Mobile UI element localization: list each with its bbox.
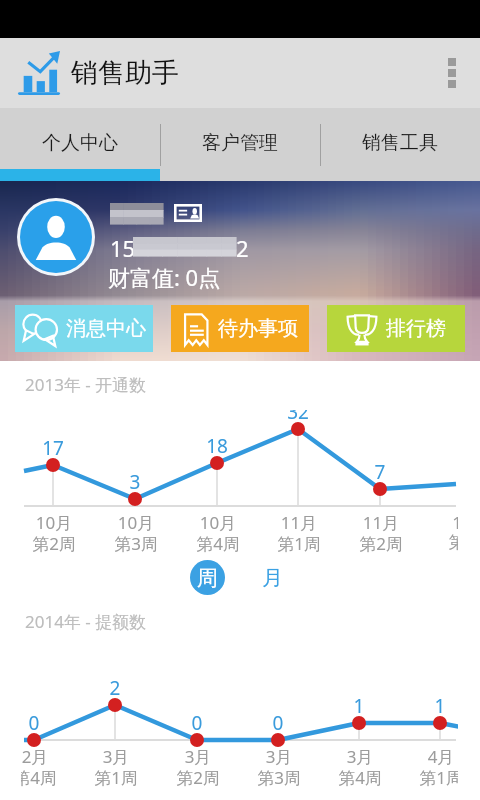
staticText: 10月 (9, 511, 99, 534)
staticText: 2014年 - 提额数 (25, 610, 147, 633)
staticText: 销售工具 (362, 131, 438, 155)
staticText: 个人中心 (42, 131, 118, 155)
staticText: 3月 (315, 745, 405, 768)
staticText: 第2周 (153, 766, 243, 789)
staticText: 11月 (336, 511, 426, 534)
staticText: 第1周 (254, 532, 344, 555)
staticText: 7 (355, 459, 405, 485)
staticText: 17 (28, 435, 78, 461)
staticText: 第4周 (173, 532, 263, 555)
staticText: 月 (262, 565, 283, 591)
staticText: 3月 (234, 745, 324, 768)
staticText: 0 (9, 710, 59, 736)
button[interactable]: 排行榜 (327, 305, 465, 352)
staticText (416, 766, 480, 789)
staticText: 第1周 (396, 766, 480, 789)
staticText: 1 (412, 511, 480, 534)
staticText: 销售助手 (71, 56, 179, 90)
staticText: 10月 (91, 511, 181, 534)
staticText: 第3周 (234, 766, 324, 789)
staticText: 待办事项 (218, 316, 298, 341)
staticText: 周 (197, 565, 218, 591)
staticText: 1 (334, 693, 384, 719)
button[interactable]: 个人中心 (0, 108, 160, 181)
button[interactable]: 销售工具 (320, 108, 480, 181)
staticText: 消息中心 (66, 316, 146, 341)
staticText: 2 (90, 675, 140, 701)
button[interactable]: 消息中心 (15, 305, 153, 352)
button[interactable]: 客户管理 (160, 108, 320, 181)
staticText: 2013年 - 开通数 (25, 373, 147, 396)
staticText: 第4周 (315, 766, 405, 789)
staticText: 0 (253, 710, 303, 736)
button[interactable]: 周 (190, 560, 225, 595)
staticText: 第1周 (71, 766, 161, 789)
staticText: 3月 (71, 745, 161, 768)
staticText: 第 (412, 532, 480, 553)
staticText: 客户管理 (202, 131, 278, 155)
staticText: 4月 (396, 745, 480, 768)
staticText: 第3周 (91, 532, 181, 555)
button[interactable]: More options (424, 38, 480, 108)
staticText: 第4周 (0, 766, 80, 789)
staticText: 3 (110, 469, 160, 495)
staticText: 3月 (153, 745, 243, 768)
staticText: 32 (273, 399, 323, 425)
staticText: 排行榜 (386, 316, 446, 341)
staticText: 2月 (0, 745, 80, 768)
staticText: 第2周 (336, 532, 426, 555)
staticText: 18 (192, 433, 242, 459)
button[interactable]: 待办事项 (171, 305, 309, 352)
staticText: 财富值: 0点 (108, 262, 221, 292)
staticText: 11月 (254, 511, 344, 534)
staticText (416, 745, 480, 768)
staticText: 1 (415, 693, 465, 719)
staticText: 10月 (173, 511, 263, 534)
button[interactable]: 月 (255, 560, 290, 595)
staticText: 0 (172, 710, 222, 736)
staticText: 第2周 (9, 532, 99, 555)
button[interactable]: Avatar (20, 201, 92, 273)
staticText: 15 (110, 233, 136, 263)
staticText: 2 (236, 233, 249, 263)
